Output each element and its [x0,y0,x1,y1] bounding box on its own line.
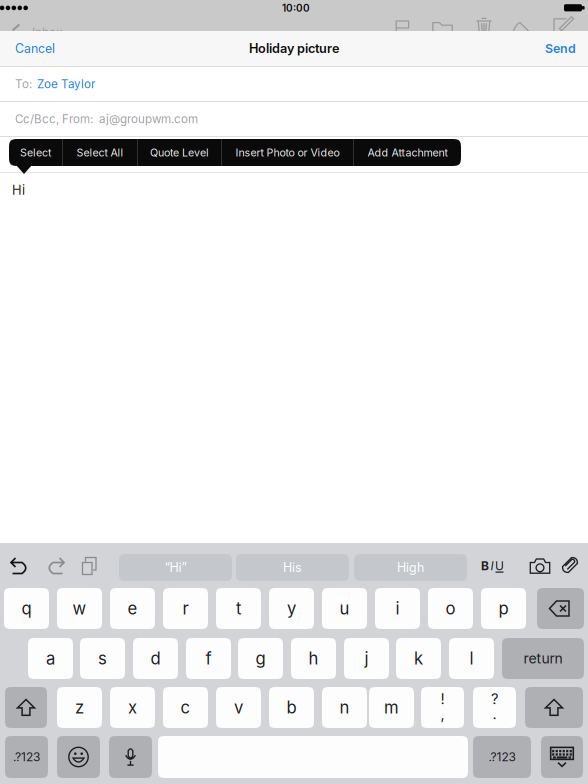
staticText: b [286,697,296,718]
staticText: U [495,559,504,573]
button[interactable]: Delete [537,588,584,629]
staticText: g [255,648,265,669]
staticText: ? [491,690,498,708]
staticText: n [339,697,349,718]
staticText: 10:00 [282,2,310,14]
button[interactable]: .?123 [473,736,531,778]
button[interactable]: Select [9,139,62,166]
button[interactable]: Cc/Bcc, From: [15,109,335,129]
staticText: l [469,648,473,669]
button[interactable]: Bold, italic, underline [476,552,510,580]
staticText: r [182,598,188,619]
staticText: Select [20,146,51,159]
button[interactable]: g [238,638,283,679]
staticText: v [234,697,243,718]
staticText: q [21,598,31,619]
button[interactable]: Cancel [15,39,77,58]
button[interactable]: Paste [76,552,104,580]
button[interactable]: z [57,687,102,728]
button[interactable]: Add Attachment [354,139,461,166]
button[interactable]: Select All [63,139,137,166]
staticText: Quote Level [150,146,209,159]
staticText: .?123 [13,750,40,764]
button[interactable]: His [236,554,349,581]
staticText: x [128,697,137,718]
staticText: z [75,697,84,718]
staticText: Inbox [32,25,63,40]
button[interactable]: Emoji [57,736,100,778]
button[interactable]: Hide keyboard [541,736,583,778]
button[interactable]: ? [473,687,516,728]
staticText: s [98,648,107,669]
button[interactable]: a [28,638,73,679]
staticText: Insert Photo or Video [235,146,339,159]
staticText: Zoe Taylor [37,77,95,91]
button[interactable]: Redo [40,552,70,580]
button[interactable]: s [80,638,125,679]
button[interactable]: n [322,687,367,728]
button[interactable]: f [186,638,231,679]
button[interactable]: Attach file [557,550,583,580]
button[interactable]: b [269,687,314,728]
staticText: Send [545,41,576,56]
staticText: Cancel [15,41,55,56]
staticText: d [150,648,160,669]
staticText: , [440,705,444,723]
button[interactable]: h [291,638,336,679]
button[interactable]: ! [421,687,464,728]
button[interactable]: y [269,588,314,629]
button[interactable]: Shift [525,687,583,728]
staticText: Select All [76,146,123,159]
button[interactable]: r [163,588,208,629]
staticText: ! [440,690,444,708]
button[interactable]: “Hi” [119,554,232,581]
button[interactable]: Insert Photo or Video [222,139,353,166]
staticText: Cc/Bcc, From: [15,112,93,126]
staticText: His [283,560,302,575]
staticText: i [395,598,399,619]
staticText: . [492,705,496,723]
staticText: return [523,650,562,667]
button[interactable]: Quote Level [138,139,221,166]
staticText: To: [15,77,32,91]
button[interactable]: l [449,638,494,679]
button[interactable]: .?123 [5,736,48,778]
staticText: Add Attachment [367,146,447,159]
button[interactable]: m [369,687,414,728]
staticText: a [46,648,55,669]
button[interactable]: Undo [5,552,35,580]
button[interactable]: Take photo [524,553,556,579]
button[interactable]: o [428,588,473,629]
button[interactable]: c [163,687,208,728]
button[interactable]: To: [15,74,335,94]
button[interactable]: return [502,638,584,679]
staticText: j [364,648,368,669]
button[interactable]: u [322,588,367,629]
staticText: u [339,598,349,619]
button[interactable]: v [216,687,261,728]
button[interactable]: t [216,588,261,629]
button[interactable]: w [57,588,102,629]
button[interactable]: i [375,588,420,629]
button[interactable]: j [344,638,389,679]
staticText: Holiday picture [249,41,339,56]
staticText: o [445,598,455,619]
button[interactable]: p [481,588,526,629]
staticText: “Hi” [164,560,186,575]
staticText: aj@groupwm.com [99,112,198,126]
button[interactable]: High [354,554,467,581]
staticText: e [127,598,137,619]
staticText: c [180,697,190,718]
button[interactable]: d [133,638,178,679]
button[interactable]: k [396,638,441,679]
button[interactable]: q [4,588,49,629]
button[interactable]: e [110,588,155,629]
staticText: w [72,598,86,619]
button[interactable]: Shift [5,687,47,728]
staticText: p [498,598,508,619]
button[interactable]: Dictation [109,736,152,778]
button[interactable]: Send [514,39,576,58]
button[interactable]: x [110,687,155,728]
staticText: High [397,560,424,575]
